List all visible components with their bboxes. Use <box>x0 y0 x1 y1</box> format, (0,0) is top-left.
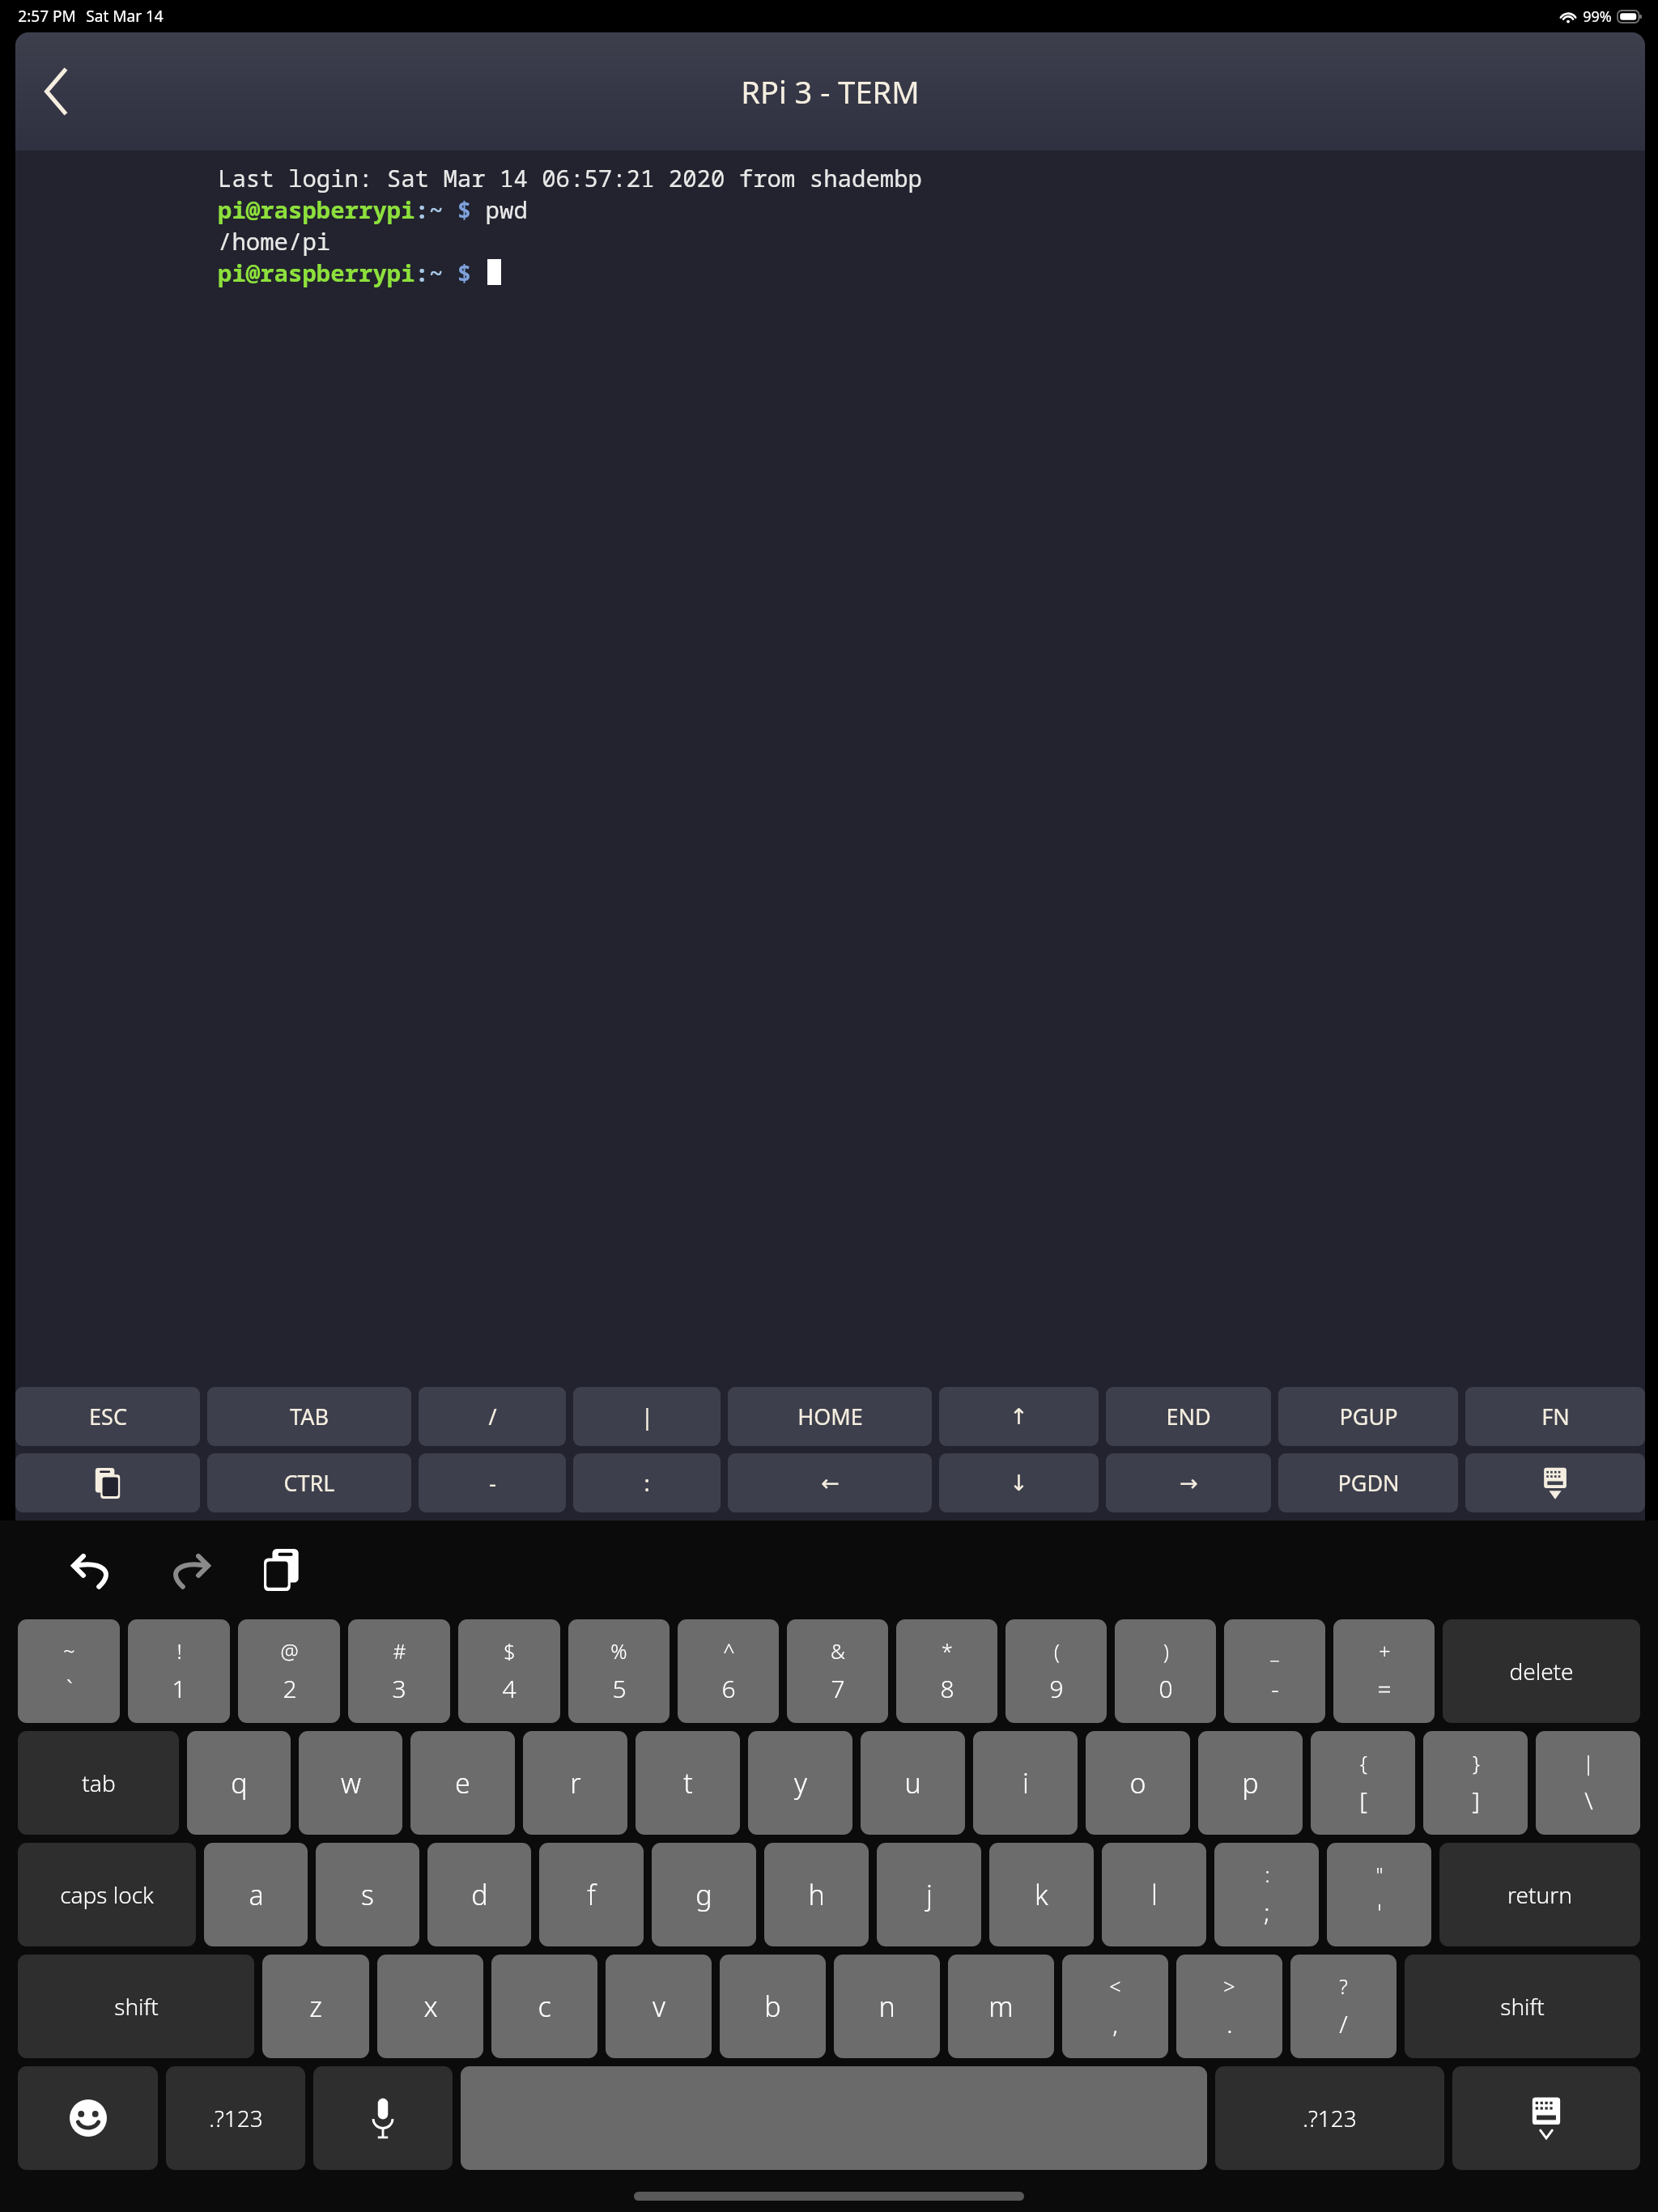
button[interactable]: y <box>748 1731 852 1835</box>
button[interactable]: u <box>861 1731 965 1835</box>
button[interactable]: a <box>204 1843 308 1946</box>
button[interactable]: ^ <box>678 1619 779 1723</box>
button[interactable]: g <box>652 1843 756 1946</box>
button[interactable]: Back <box>22 57 90 125</box>
staticText: & <box>831 1637 845 1665</box>
staticText: 9 <box>1049 1672 1064 1705</box>
button[interactable]: x <box>377 1955 483 2058</box>
button[interactable]: c <box>491 1955 597 2058</box>
button[interactable]: % <box>568 1619 670 1723</box>
button[interactable]: b <box>720 1955 826 2058</box>
button[interactable]: : <box>573 1453 721 1512</box>
staticText: i <box>1022 1764 1029 1802</box>
button[interactable]: j <box>877 1843 981 1946</box>
button[interactable]: z <box>262 1955 369 2058</box>
button[interactable]: n <box>834 1955 940 2058</box>
button[interactable]: shift <box>18 1955 254 2058</box>
button[interactable]: + <box>1333 1619 1435 1723</box>
button[interactable]: k <box>989 1843 1094 1946</box>
staticText: END <box>1166 1402 1211 1431</box>
button[interactable]: Undo <box>62 1538 125 1602</box>
staticText: 2:57 PM <box>18 6 76 27</box>
button[interactable]: ( <box>1005 1619 1107 1723</box>
button[interactable]: TAB <box>207 1387 411 1446</box>
staticText: / <box>1339 2007 1348 2040</box>
button[interactable]: PGUP <box>1278 1387 1458 1446</box>
staticText: f <box>587 1876 596 1913</box>
button[interactable]: Hide keyboard <box>1452 2066 1640 2170</box>
staticText: < <box>1109 1972 1121 2000</box>
button[interactable]: Hide keyboard <box>1465 1453 1645 1512</box>
button[interactable]: ← <box>728 1453 932 1512</box>
button[interactable]: ↓ <box>939 1453 1099 1512</box>
staticText: n <box>878 1988 895 2025</box>
button[interactable]: t <box>636 1731 740 1835</box>
button[interactable]: Redo <box>157 1538 220 1602</box>
button[interactable]: shift <box>1405 1955 1640 2058</box>
button[interactable]: FN <box>1465 1387 1645 1446</box>
button[interactable]: { <box>1311 1731 1415 1835</box>
button[interactable]: CTRL <box>207 1453 411 1512</box>
button[interactable]: < <box>1062 1955 1168 2058</box>
staticText: h <box>808 1876 825 1913</box>
button[interactable]: ) <box>1115 1619 1216 1723</box>
button[interactable]: Emoji <box>18 2066 158 2170</box>
button[interactable]: Paste <box>15 1453 200 1512</box>
staticText: /home/pi <box>218 225 331 257</box>
button[interactable]: tab <box>18 1731 179 1835</box>
button[interactable]: / <box>419 1387 566 1446</box>
button[interactable]: Dictate <box>313 2066 453 2170</box>
button[interactable]: Space <box>461 2066 1207 2170</box>
button[interactable]: : <box>1214 1843 1319 1946</box>
button[interactable]: v <box>606 1955 712 2058</box>
button[interactable]: PGDN <box>1278 1453 1458 1512</box>
button[interactable]: ESC <box>15 1387 200 1446</box>
button[interactable]: i <box>973 1731 1078 1835</box>
button[interactable]: Paste <box>253 1538 316 1602</box>
button[interactable]: h <box>764 1843 869 1946</box>
button[interactable]: ! <box>128 1619 230 1723</box>
button[interactable]: # <box>348 1619 450 1723</box>
button[interactable]: return <box>1439 1843 1640 1946</box>
button[interactable]: - <box>419 1453 566 1512</box>
button[interactable]: > <box>1176 1955 1282 2058</box>
button[interactable]: } <box>1423 1731 1528 1835</box>
button[interactable]: → <box>1106 1453 1271 1512</box>
button[interactable]: & <box>787 1619 888 1723</box>
staticText: RPi 3 - TERM <box>741 70 920 113</box>
staticText: x <box>423 1988 438 2025</box>
button[interactable]: ↑ <box>939 1387 1099 1446</box>
staticText: s <box>361 1876 374 1913</box>
button[interactable]: f <box>539 1843 644 1946</box>
button[interactable]: | <box>1536 1731 1640 1835</box>
button[interactable]: HOME <box>728 1387 932 1446</box>
staticText: a <box>249 1876 264 1913</box>
button[interactable]: p <box>1198 1731 1303 1835</box>
button[interactable]: ~ <box>18 1619 120 1723</box>
button[interactable]: q <box>187 1731 291 1835</box>
button[interactable]: l <box>1102 1843 1206 1946</box>
button[interactable]: s <box>316 1843 419 1946</box>
button[interactable]: ? <box>1290 1955 1397 2058</box>
staticText: ? <box>1339 1972 1348 2000</box>
button[interactable]: m <box>948 1955 1054 2058</box>
button[interactable]: | <box>573 1387 721 1446</box>
button[interactable]: .?123 <box>166 2066 305 2170</box>
staticText: 0 <box>1158 1672 1173 1705</box>
button[interactable]: _ <box>1224 1619 1325 1723</box>
button[interactable]: o <box>1086 1731 1190 1835</box>
button[interactable]: delete <box>1443 1619 1640 1723</box>
button[interactable]: END <box>1106 1387 1271 1446</box>
staticText: - <box>1271 1672 1279 1705</box>
button[interactable]: r <box>523 1731 627 1835</box>
button[interactable]: @ <box>238 1619 340 1723</box>
button[interactable]: caps lock <box>18 1843 196 1946</box>
button[interactable]: d <box>427 1843 531 1946</box>
button[interactable]: .?123 <box>1215 2066 1444 2170</box>
button[interactable]: " <box>1327 1843 1431 1946</box>
button[interactable]: $ <box>458 1619 560 1723</box>
button[interactable]: w <box>299 1731 402 1835</box>
staticText: o <box>1129 1764 1146 1802</box>
button[interactable]: e <box>410 1731 515 1835</box>
button[interactable]: * <box>896 1619 997 1723</box>
